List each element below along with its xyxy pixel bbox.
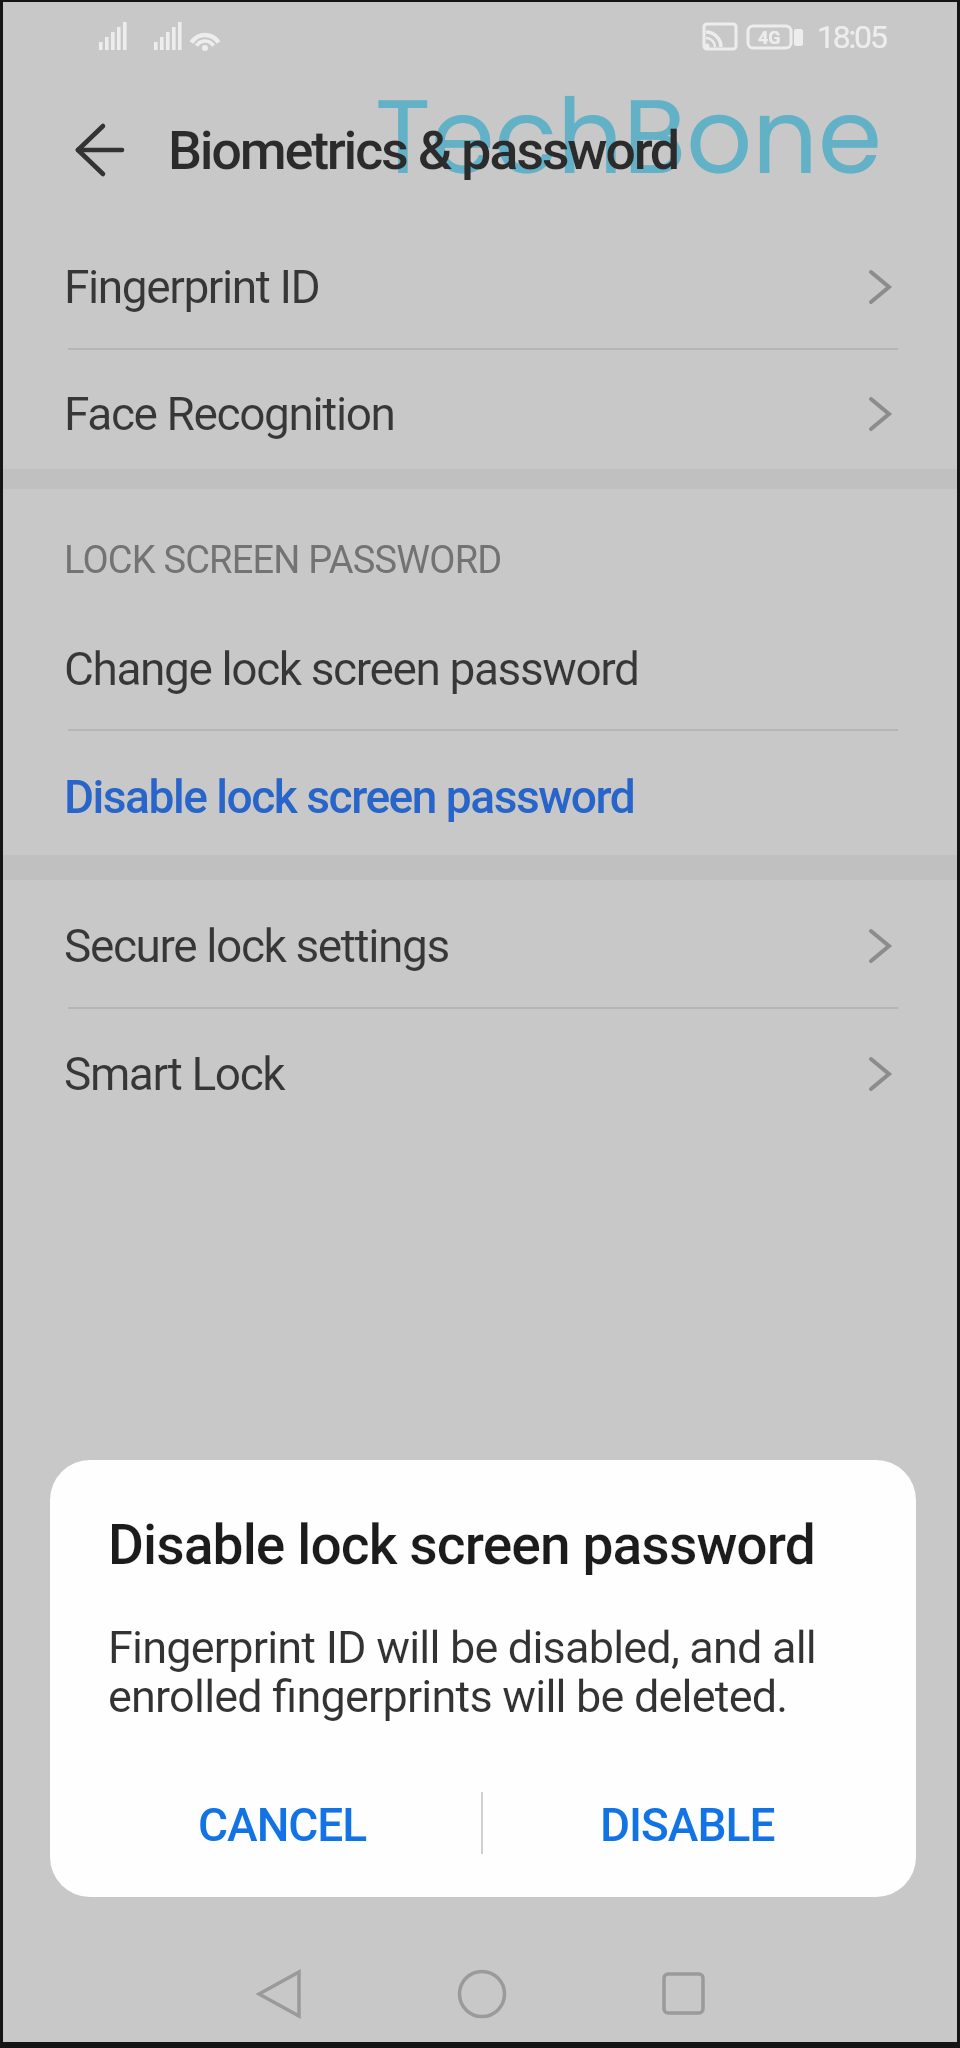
staticText: Secure lock settings [64,919,449,973]
staticText: Fingerprint ID [64,260,320,314]
button[interactable]: Change lock screen password [3,624,957,714]
staticText: Biometrics & password [168,119,679,182]
button[interactable]: Secure lock settings [3,901,957,991]
staticText: Disable lock screen password [108,1513,815,1577]
button[interactable]: Face Recognition [3,369,957,459]
staticText: Face Recognition [64,387,395,441]
staticText: Change lock screen password [64,642,639,696]
button[interactable] [612,1942,712,2042]
button[interactable]: Smart Lock [3,1029,957,1119]
staticText: Disable lock screen password [64,770,635,824]
button[interactable] [430,1942,530,2042]
staticText: LOCK SCREEN PASSWORD [64,538,502,583]
staticText: 18:05 [817,18,886,56]
button[interactable]: CANCEL [132,1780,432,1870]
button[interactable]: Biometrics & password [3,105,957,195]
staticText: CANCEL [198,1798,367,1852]
button[interactable]: Fingerprint ID [3,242,957,332]
button[interactable]: Disable lock screen password [3,752,957,842]
button[interactable]: LOCK SCREEN PASSWORD [3,515,957,605]
staticText: 4G [758,27,781,48]
staticText: DISABLE [600,1798,775,1852]
staticText: Smart Lock [64,1047,285,1101]
staticText: TechBone [375,65,882,184]
button[interactable]: DISABLE [537,1780,837,1870]
staticText: Fingerprint ID will be disabled, and all… [108,1621,816,1723]
button[interactable] [229,1942,329,2042]
